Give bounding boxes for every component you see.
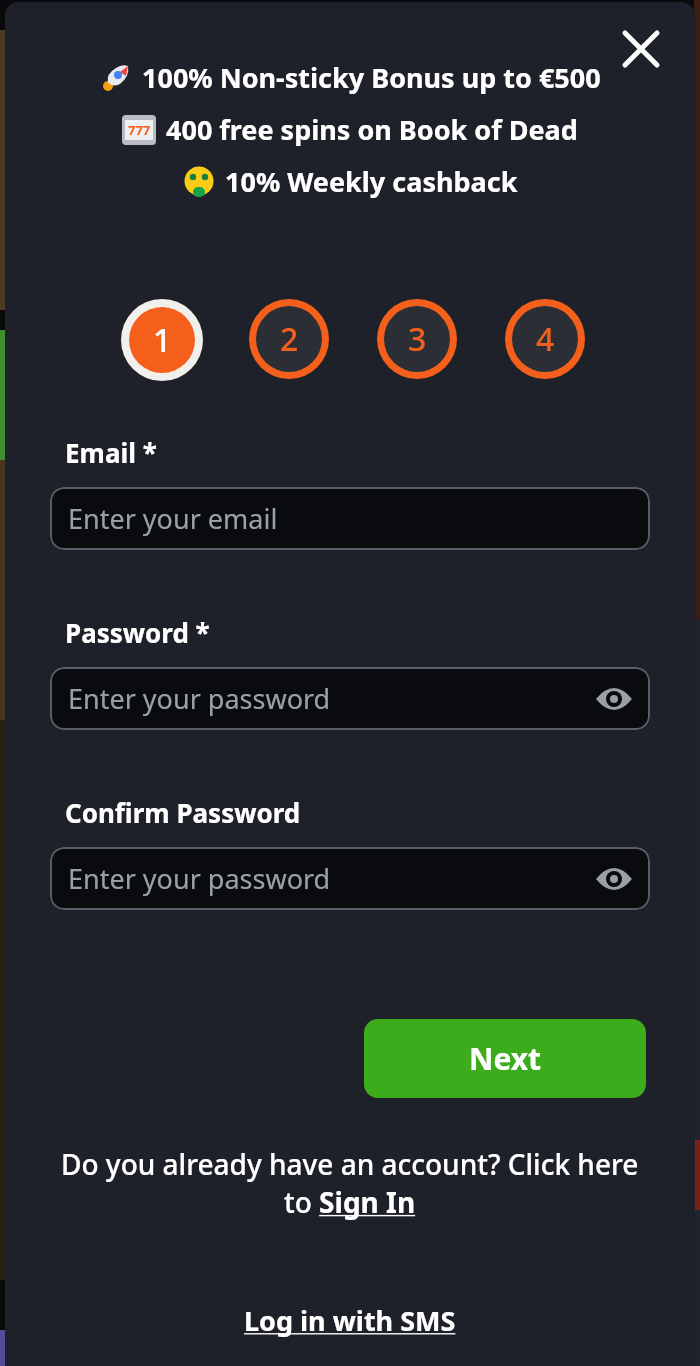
staticText: 2 <box>280 317 299 361</box>
button[interactable]: Enter your password <box>50 847 650 910</box>
button[interactable] <box>613 21 669 77</box>
staticText: 3 <box>408 317 427 361</box>
staticText: to Sign In <box>284 1183 416 1221</box>
button[interactable]: Enter your email <box>50 487 650 550</box>
staticText: Enter your email <box>68 500 278 537</box>
staticText: 100% Non-sticky Bonus up to €500 <box>142 59 601 96</box>
button[interactable]: 1 <box>121 299 203 381</box>
button[interactable]: Next <box>364 1019 646 1098</box>
staticText: Enter your password <box>68 860 331 897</box>
staticText: Log in with SMS <box>244 1302 456 1339</box>
staticText: 1 <box>153 318 172 362</box>
staticText: Next <box>469 1038 542 1079</box>
button[interactable]: Log in with SMS <box>5 1302 695 1339</box>
button[interactable]: 4 <box>505 299 585 379</box>
button[interactable]: to Sign In <box>5 1183 695 1221</box>
staticText: 10% Weekly cashback <box>225 163 518 200</box>
staticText: Password * <box>65 615 210 650</box>
staticText: Enter your password <box>68 680 331 717</box>
button[interactable]: Enter your password <box>50 667 650 730</box>
staticText: 777 <box>128 121 151 139</box>
staticText: 400 free spins on Book of Dead <box>166 111 578 148</box>
button[interactable]: 3 <box>377 299 457 379</box>
staticText: Do you already have an account? Click he… <box>61 1145 639 1183</box>
staticText: Confirm Password <box>65 795 301 830</box>
button[interactable]: 2 <box>249 299 329 379</box>
staticText: 4 <box>536 317 555 361</box>
staticText: Email * <box>65 435 157 470</box>
